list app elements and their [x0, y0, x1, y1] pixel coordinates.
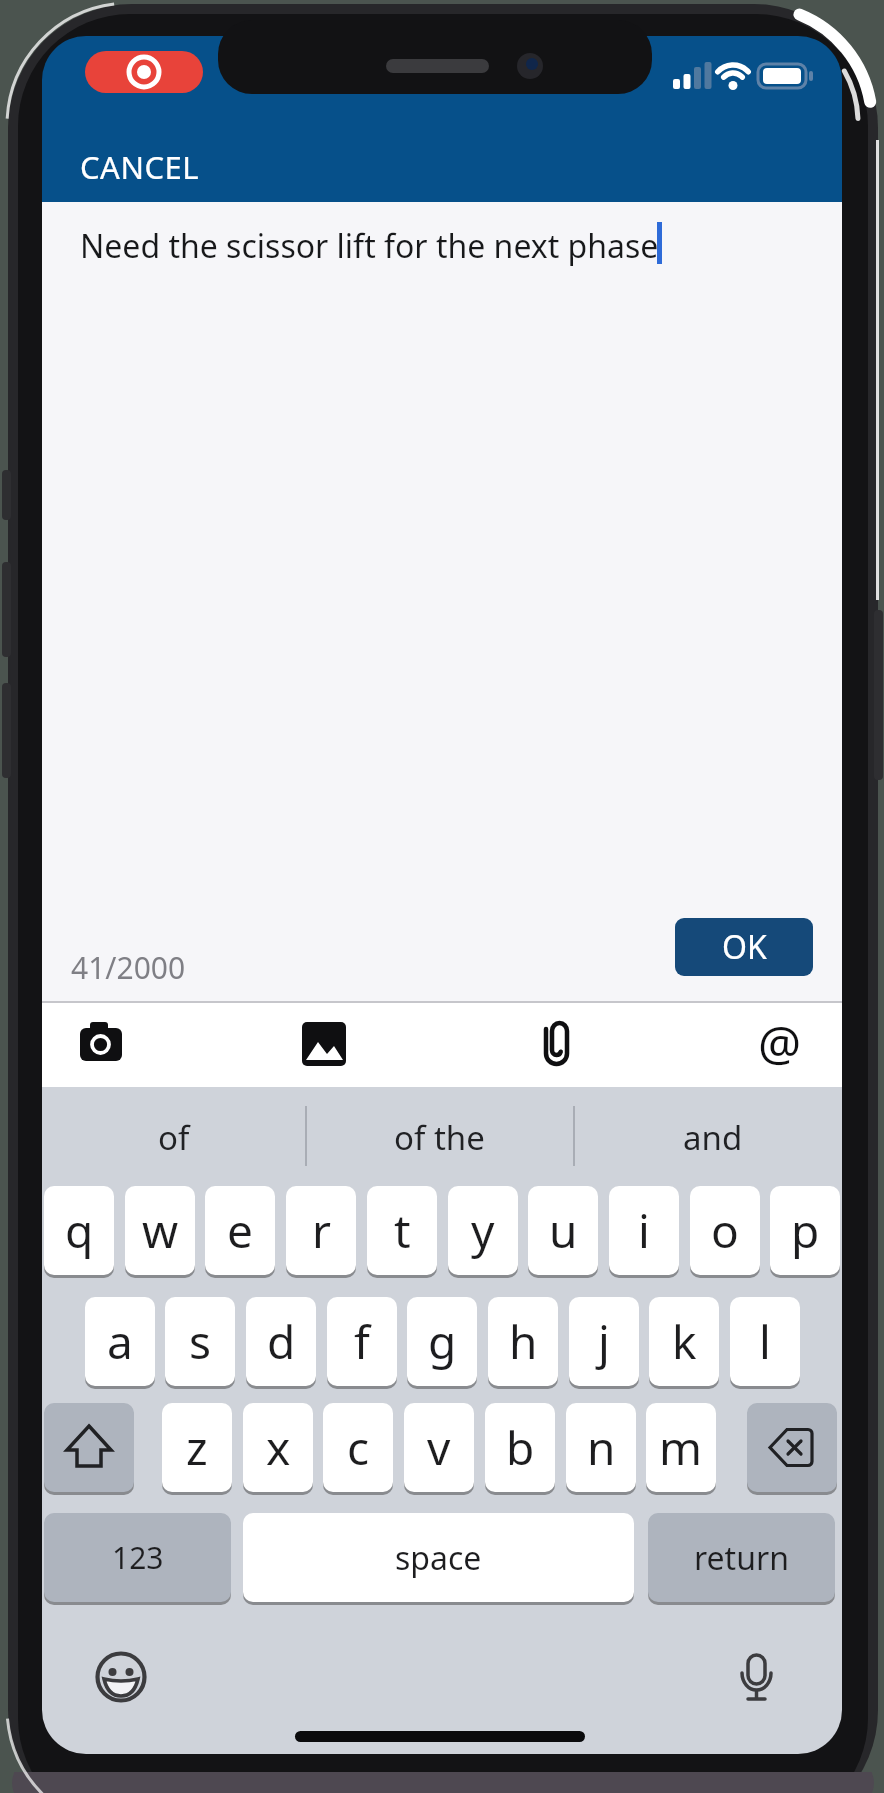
staticText: p	[791, 1199, 820, 1262]
button[interactable]: c	[323, 1403, 393, 1492]
button[interactable]: y	[448, 1186, 518, 1275]
button[interactable]: of the	[307, 1104, 571, 1170]
button[interactable]	[90, 1646, 150, 1706]
staticText: a	[107, 1310, 133, 1373]
button[interactable]: b	[485, 1403, 555, 1492]
button[interactable]: r	[286, 1186, 356, 1275]
staticText: Need the scissor lift for the next phase	[80, 224, 659, 268]
button[interactable]: x	[243, 1403, 313, 1492]
staticText: r	[312, 1199, 331, 1262]
staticText: v	[427, 1416, 451, 1479]
button[interactable]: CANCEL	[80, 146, 200, 188]
button[interactable]: u	[528, 1186, 598, 1275]
staticText: k	[672, 1310, 697, 1373]
button[interactable]: q	[44, 1186, 114, 1275]
button[interactable]: m	[646, 1403, 716, 1492]
staticText: c	[347, 1416, 370, 1479]
staticText: u	[549, 1199, 578, 1262]
button[interactable]: s	[165, 1297, 235, 1386]
staticText: y	[471, 1199, 495, 1262]
staticText: z	[186, 1416, 208, 1479]
button[interactable]: h	[488, 1297, 558, 1386]
staticText: e	[227, 1199, 253, 1262]
staticText: t	[394, 1199, 411, 1262]
button[interactable]: k	[649, 1297, 719, 1386]
button[interactable]: d	[246, 1297, 316, 1386]
button[interactable]: g	[407, 1297, 477, 1386]
button[interactable]: t	[367, 1186, 437, 1275]
button[interactable]: l	[730, 1297, 800, 1386]
staticText: s	[189, 1310, 212, 1373]
staticText: b	[506, 1416, 535, 1479]
button[interactable]: 123	[44, 1513, 231, 1602]
staticText: 41/2000	[71, 947, 186, 988]
button[interactable]	[747, 1403, 837, 1492]
button[interactable]	[294, 1014, 354, 1074]
button[interactable]: f	[327, 1297, 397, 1386]
staticText: l	[759, 1310, 771, 1373]
staticText: q	[65, 1199, 94, 1262]
staticText: o	[711, 1199, 739, 1262]
button[interactable]: of	[42, 1104, 305, 1170]
button[interactable]	[73, 1014, 133, 1074]
staticText: OK	[722, 925, 767, 969]
button[interactable]: OK	[675, 918, 813, 976]
staticText: of	[158, 1115, 190, 1160]
staticText: w	[142, 1199, 179, 1262]
button[interactable]: space	[243, 1513, 634, 1602]
button[interactable]: and	[583, 1104, 842, 1170]
button[interactable]: e	[205, 1186, 275, 1275]
button[interactable]: w	[125, 1186, 195, 1275]
button[interactable]: z	[162, 1403, 232, 1492]
staticText: 123	[112, 1537, 164, 1578]
staticText: of the	[394, 1115, 485, 1160]
staticText: f	[354, 1310, 370, 1373]
staticText: return	[694, 1536, 789, 1580]
button[interactable]: return	[648, 1513, 835, 1602]
staticText: n	[587, 1416, 616, 1479]
staticText: h	[509, 1310, 538, 1373]
staticText: x	[266, 1416, 291, 1479]
button[interactable]: v	[404, 1403, 474, 1492]
staticText: d	[267, 1310, 296, 1373]
button[interactable]	[726, 1646, 786, 1706]
button[interactable]	[526, 1014, 586, 1074]
staticText: j	[598, 1310, 610, 1373]
staticText: @	[758, 1010, 802, 1070]
button[interactable]: p	[770, 1186, 840, 1275]
staticText: and	[683, 1115, 743, 1160]
button[interactable]: j	[569, 1297, 639, 1386]
button[interactable]: o	[690, 1186, 760, 1275]
button[interactable]	[44, 1403, 134, 1492]
staticText: space	[395, 1536, 482, 1580]
button[interactable]: i	[609, 1186, 679, 1275]
staticText: CANCEL	[80, 146, 200, 188]
staticText: i	[638, 1199, 650, 1262]
button[interactable]: a	[85, 1297, 155, 1386]
button[interactable]: @	[750, 1010, 810, 1070]
button[interactable]: n	[566, 1403, 636, 1492]
staticText: m	[659, 1416, 703, 1479]
staticText: g	[428, 1310, 457, 1373]
